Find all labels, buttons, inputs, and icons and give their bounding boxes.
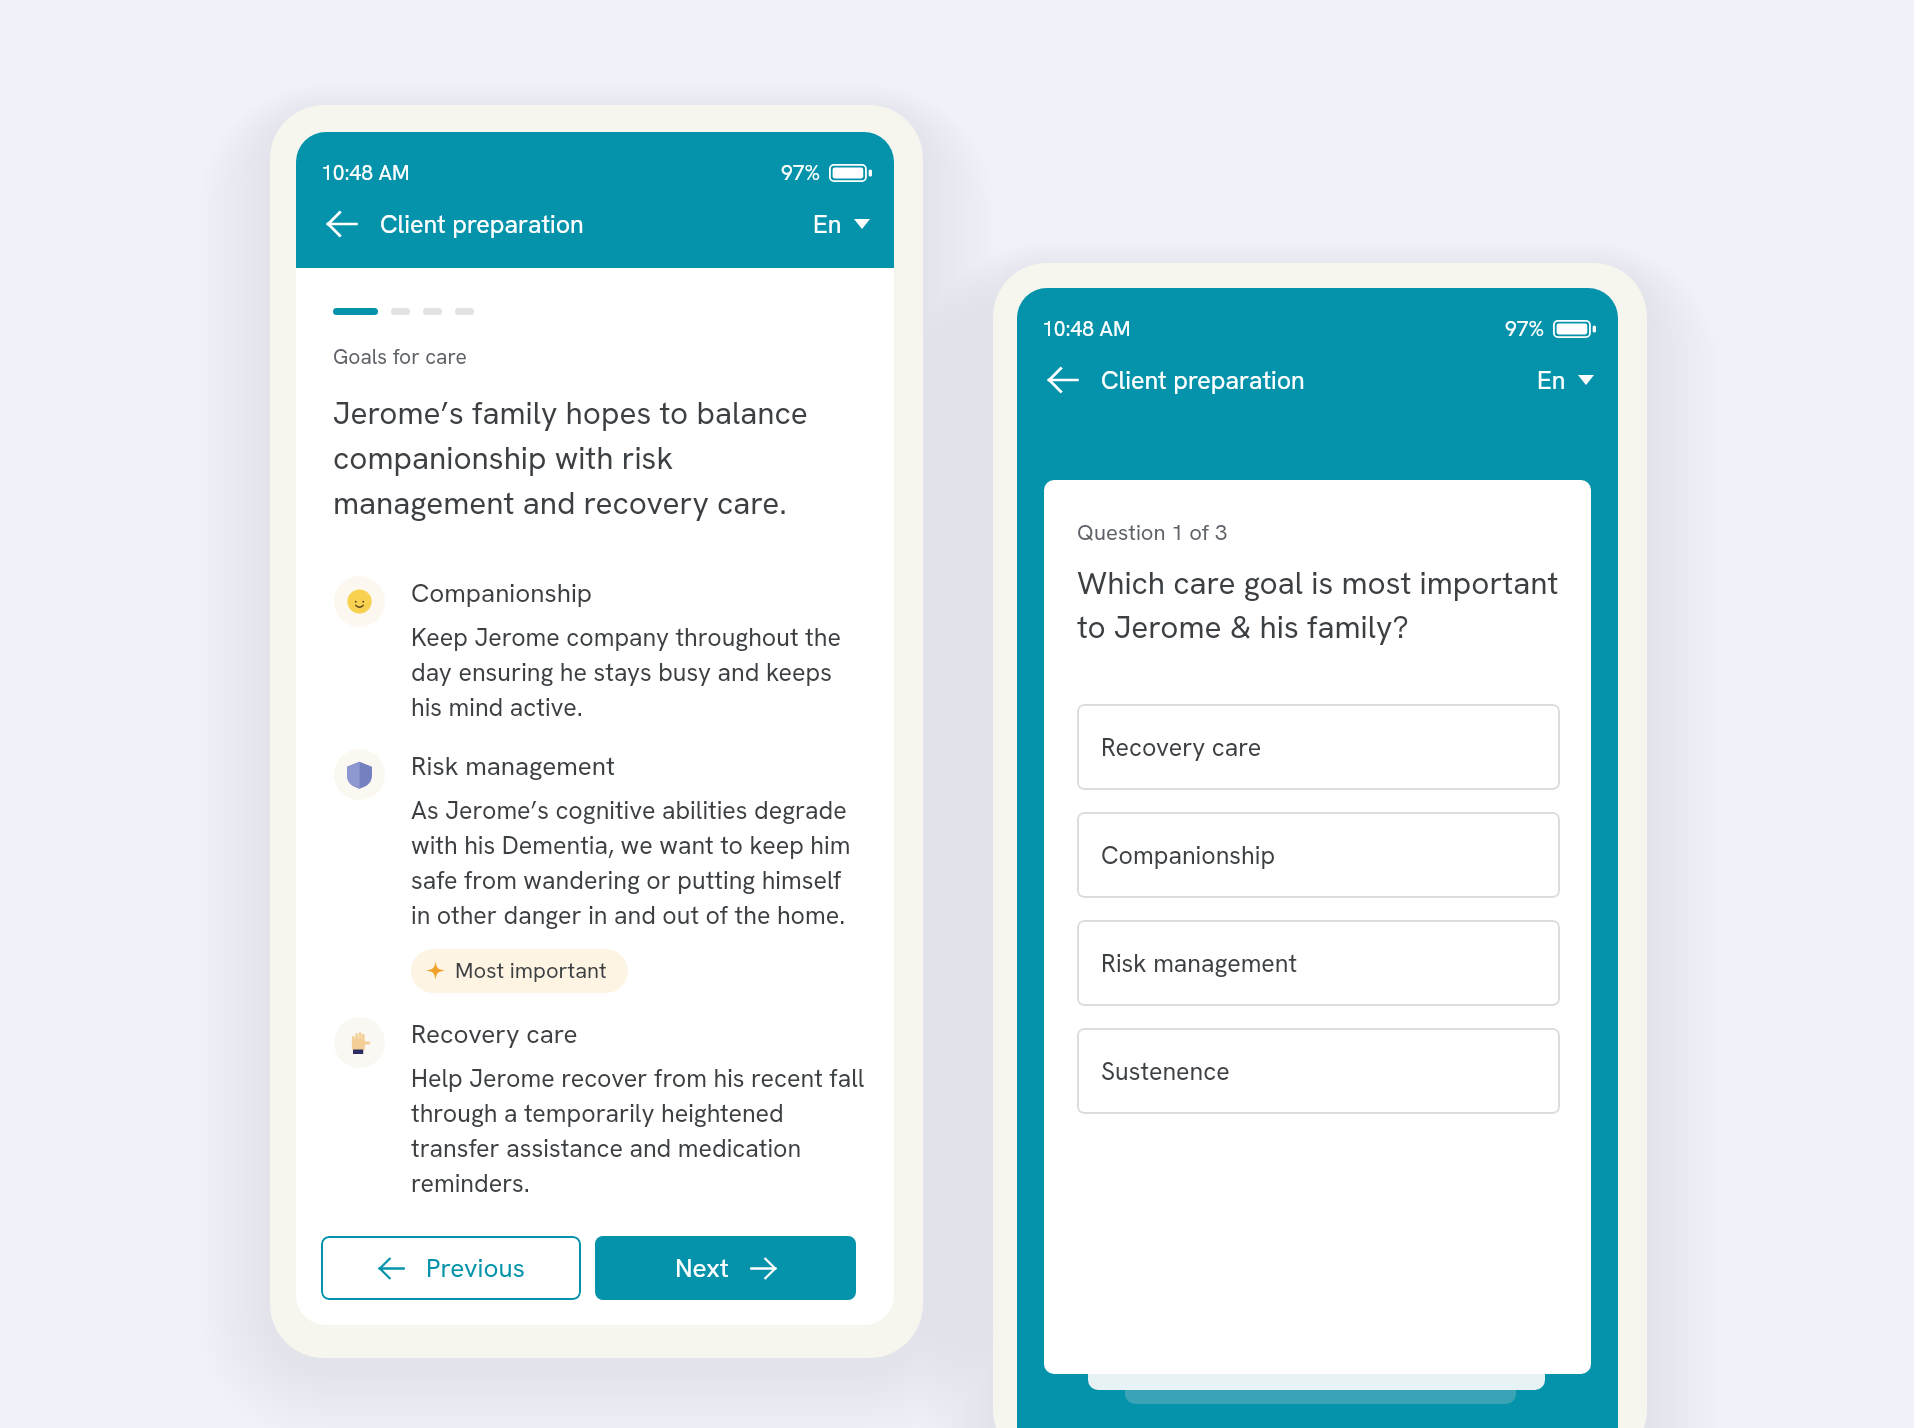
staticText: Companionship <box>1101 839 1276 872</box>
staticText: Risk management <box>1101 947 1298 980</box>
button[interactable]: Recovery care <box>1077 704 1560 790</box>
staticText: Previous <box>426 1251 525 1285</box>
staticText: 10:48 AM <box>321 159 410 186</box>
staticText: Companionship <box>411 576 593 610</box>
staticText: En <box>813 208 842 240</box>
button[interactable]: Next <box>595 1236 856 1300</box>
staticText: Next <box>675 1251 729 1285</box>
staticText: Goals for care <box>333 343 467 370</box>
staticText: Question 1 of 3 <box>1077 518 1228 547</box>
staticText: 97% <box>1505 315 1545 342</box>
staticText: Recovery care <box>411 1017 578 1051</box>
button[interactable]: Risk management <box>1077 920 1560 1006</box>
staticText: Risk management <box>411 749 616 783</box>
staticText: 10:48 AM <box>1042 315 1131 342</box>
button[interactable]: Previous <box>321 1236 581 1300</box>
staticText: Keep Jerome company throughout the day e… <box>411 621 866 723</box>
staticText: As Jerome’s cognitive abilities degrade … <box>411 794 866 931</box>
button[interactable]: Back <box>321 203 363 245</box>
staticText: Sustenence <box>1101 1055 1230 1088</box>
staticText: Recovery care <box>1101 731 1262 764</box>
button[interactable]: En <box>809 202 874 246</box>
button[interactable]: Sustenence <box>1077 1028 1560 1114</box>
staticText: Client preparation <box>1101 364 1305 397</box>
button[interactable]: Back <box>1042 359 1084 401</box>
staticText: Jerome’s family hopes to balance compani… <box>333 392 816 523</box>
staticText: Most important <box>455 956 607 985</box>
staticText: Help Jerome recover from his recent fall… <box>411 1062 866 1199</box>
staticText: Which care goal is most important to Jer… <box>1077 562 1560 647</box>
staticText: En <box>1537 364 1566 396</box>
button[interactable]: Companionship <box>1077 812 1560 898</box>
button[interactable]: En <box>1533 358 1598 402</box>
staticText: 97% <box>781 159 821 186</box>
staticText: Client preparation <box>380 208 584 241</box>
